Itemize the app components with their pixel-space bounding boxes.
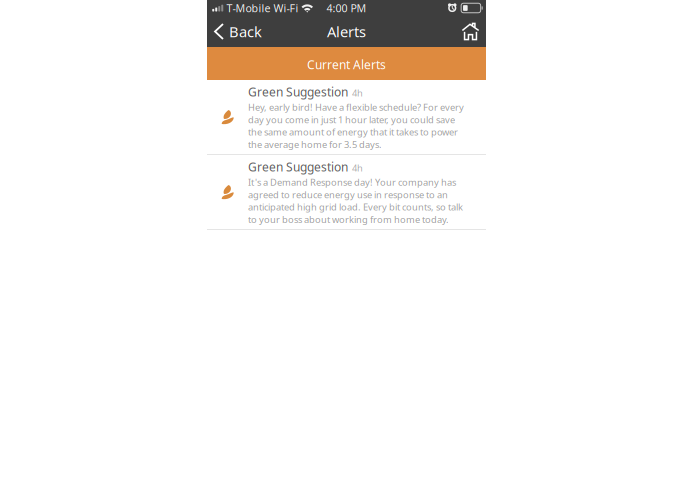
- staticText: 4h: [352, 162, 363, 174]
- staticText: Green Suggestion: [248, 159, 348, 175]
- staticText: Back: [229, 22, 262, 41]
- staticText: T-Mobile Wi-Fi: [226, 1, 298, 15]
- button[interactable]: Home: [454, 16, 486, 47]
- button[interactable]: Current Alerts: [207, 47, 486, 80]
- button[interactable]: Green Suggestion: [207, 155, 486, 230]
- staticText: It's a Demand Response day! Your company…: [248, 176, 463, 225]
- staticText: Current Alerts: [307, 56, 386, 72]
- staticText: 4:00 PM: [326, 1, 366, 15]
- button[interactable]: Green Suggestion: [207, 80, 486, 155]
- staticText: 4h: [352, 87, 363, 99]
- staticText: Hey, early bird! Have a flexible schedul…: [248, 101, 464, 150]
- staticText: Alerts: [327, 22, 366, 41]
- staticText: Green Suggestion: [248, 84, 348, 100]
- button[interactable]: Back: [207, 16, 270, 47]
